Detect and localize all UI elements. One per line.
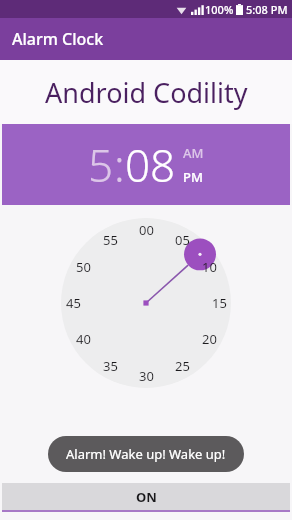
staticText: ON xyxy=(136,488,157,506)
staticText: 08 xyxy=(125,135,176,195)
staticText: 00 xyxy=(139,221,154,239)
staticText: Android Codility xyxy=(45,74,248,111)
button[interactable]: PM xyxy=(183,168,203,186)
button[interactable]: 5 xyxy=(88,135,114,195)
staticText: 40 xyxy=(76,330,91,348)
staticText: 05 xyxy=(175,231,190,249)
staticText: 25 xyxy=(175,357,190,375)
staticText: 15 xyxy=(212,294,227,312)
button[interactable]: AM xyxy=(183,144,204,162)
button[interactable]: Alarm Clock xyxy=(0,18,292,60)
staticText: Alarm! Wake up! Wake up! xyxy=(66,445,226,463)
staticText: 100% xyxy=(205,2,234,17)
button[interactable]: ON xyxy=(2,483,290,510)
staticText: 45 xyxy=(66,294,81,312)
staticText: 50 xyxy=(76,258,91,276)
staticText: 5:08 PM xyxy=(246,2,288,17)
staticText: : xyxy=(114,135,125,195)
staticText: 30 xyxy=(139,367,154,385)
button[interactable]: Alarm! Wake up! Wake up! xyxy=(48,436,244,472)
staticText: Alarm Clock xyxy=(12,28,104,50)
staticText: 55 xyxy=(103,231,118,249)
staticText: 20 xyxy=(202,330,217,348)
staticText: PM xyxy=(183,168,203,186)
staticText: 5 xyxy=(88,135,114,195)
staticText: AM xyxy=(183,144,204,162)
staticText: 35 xyxy=(103,357,118,375)
button[interactable]: 08 xyxy=(125,135,176,195)
staticText: 10 xyxy=(202,258,217,276)
button[interactable]: Minute picker xyxy=(61,218,231,388)
